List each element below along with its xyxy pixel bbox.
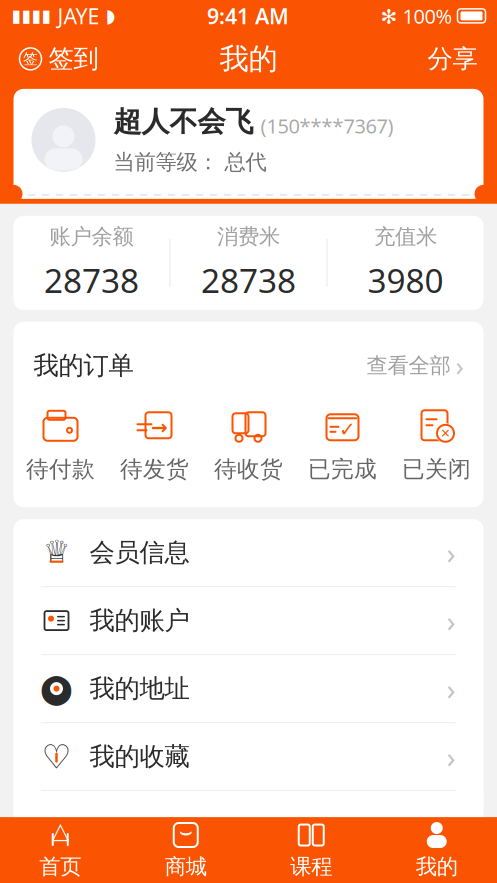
staticText: JAYE [51, 2, 105, 30]
staticText: 消费米 [217, 224, 280, 250]
staticText: 账户余额 [49, 224, 133, 250]
staticText: 28738 [44, 258, 139, 302]
staticText: ◗ [105, 5, 115, 26]
staticText: 我的 [219, 41, 277, 77]
staticText: ⬤ [40, 672, 73, 705]
staticText: ▮▮▮▮ [11, 6, 51, 26]
staticText: 签 [23, 50, 38, 68]
staticText: ♡ [41, 738, 71, 775]
staticText: 会员信息 [89, 537, 189, 568]
button[interactable]: △ [0, 813, 123, 883]
button[interactable]: ⌣ [123, 813, 248, 883]
staticText: › [446, 601, 455, 640]
staticText: › [446, 533, 455, 572]
staticText: ✕ [440, 426, 450, 440]
staticText: ✓ [339, 418, 356, 441]
button[interactable]: 我的 [374, 813, 497, 883]
staticText: 我的 [416, 853, 458, 880]
staticText: △ [52, 818, 69, 843]
staticText: ✻ 100% [380, 3, 452, 29]
staticText: 待付款 [26, 455, 95, 483]
button[interactable]: 签 [11, 37, 106, 80]
staticText: 首页 [39, 853, 81, 880]
staticText: (150****7367) [260, 112, 393, 139]
staticText: ♕ [43, 534, 70, 569]
staticText: 3980 [367, 258, 443, 302]
staticText: 超人不会飞 [113, 105, 253, 139]
staticText: 当前等级： 总代 [113, 149, 266, 175]
staticText: 已关闭 [402, 455, 471, 483]
staticText: 签到 [48, 43, 98, 74]
staticText: ⌣ [179, 822, 193, 842]
button[interactable]: 课程 [248, 813, 374, 883]
staticText: › [446, 669, 455, 708]
staticText: 充值米 [374, 224, 437, 250]
button[interactable]: ♡ [13, 723, 483, 790]
button[interactable]: 分享 [419, 37, 485, 80]
staticText: → [151, 416, 168, 439]
staticText: 分享 [427, 43, 477, 74]
staticText: 9:41 AM [207, 2, 289, 30]
staticText: 我的账户 [89, 605, 189, 636]
staticText: 我的订单 [33, 350, 133, 381]
staticText: 商城 [165, 853, 207, 880]
staticText: 课程 [290, 853, 332, 880]
staticText: › [455, 348, 463, 383]
staticText: 待收货 [214, 455, 283, 483]
button[interactable]: ✕ [389, 407, 483, 483]
button[interactable]: ♕ [13, 519, 483, 586]
staticText: 待发货 [120, 455, 189, 483]
staticText: 查看全部 [366, 352, 450, 379]
button[interactable]: ✓ [295, 407, 389, 483]
button[interactable]: 待收货 [201, 407, 295, 483]
staticText: 我的地址 [89, 673, 189, 704]
staticText: 我的收藏 [89, 741, 189, 772]
button[interactable]: → [107, 407, 201, 483]
button[interactable]: 我的账户 [13, 587, 483, 654]
button[interactable]: 待付款 [13, 407, 107, 483]
button[interactable]: 查看全部 [366, 344, 463, 387]
staticText: › [446, 737, 455, 776]
staticText: 已完成 [308, 455, 377, 483]
button[interactable]: ⬤ [13, 655, 483, 722]
staticText: 28738 [201, 258, 296, 302]
